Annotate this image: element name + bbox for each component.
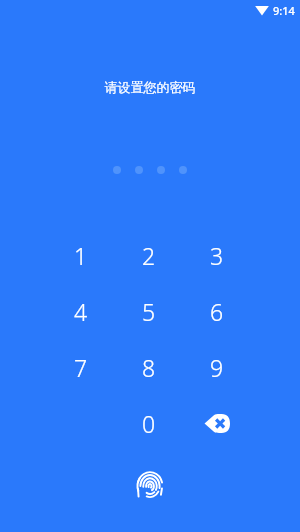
staticText: 请设置您的密码	[0, 79, 300, 95]
button[interactable]: Fingerprint unlock	[130, 465, 170, 505]
button[interactable]: 4	[47, 283, 115, 339]
staticText: 3	[210, 240, 224, 271]
staticText: 1	[74, 240, 88, 271]
staticText: 4	[74, 296, 88, 327]
staticText: 6	[210, 296, 224, 327]
staticText: 9:14	[273, 3, 295, 18]
button[interactable]: 5	[115, 283, 183, 339]
staticText: 2	[142, 240, 156, 271]
staticText: 9	[210, 352, 224, 383]
staticText: 0	[142, 408, 156, 439]
staticText: 8	[142, 352, 156, 383]
staticText: 5	[142, 296, 156, 327]
staticText: 7	[74, 352, 88, 383]
button[interactable]: Backspace	[183, 395, 251, 451]
button[interactable]: 0	[115, 395, 183, 451]
button[interactable]: 1	[47, 227, 115, 283]
button[interactable]: 3	[183, 227, 251, 283]
button[interactable]: 6	[183, 283, 251, 339]
button[interactable]: 9	[183, 339, 251, 395]
button[interactable]: 8	[115, 339, 183, 395]
button[interactable]: 2	[115, 227, 183, 283]
button[interactable]: 7	[47, 339, 115, 395]
